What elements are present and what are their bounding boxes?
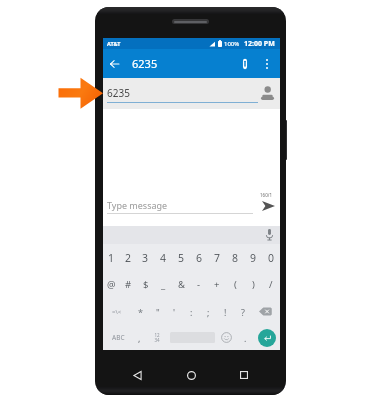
button[interactable]: 8: [226, 244, 244, 271]
button[interactable]: Emoji: [217, 325, 236, 350]
staticText: $: [143, 278, 149, 291]
staticText: #: [125, 278, 132, 291]
staticText: 5: [178, 251, 185, 265]
button[interactable]: Recent apps: [234, 365, 254, 385]
button[interactable]: Back: [127, 365, 147, 385]
button[interactable]: 9: [244, 244, 262, 271]
button[interactable]: ": [149, 298, 166, 325]
button[interactable]: Back: [105, 54, 124, 73]
staticText: 100%: [224, 40, 240, 48]
button[interactable]: Send: [260, 198, 276, 214]
button[interactable]: $: [137, 271, 154, 298]
button[interactable]: &: [172, 271, 190, 298]
staticText: (: [234, 278, 237, 291]
staticText: 3: [142, 251, 149, 265]
button[interactable]: #: [120, 271, 137, 298]
staticText: 12 34: [154, 332, 160, 343]
button[interactable]: 0: [262, 244, 280, 271]
staticText: AT&T: [107, 40, 121, 47]
staticText: ABC: [112, 333, 125, 342]
staticText: +: [214, 278, 220, 291]
staticText: 2: [125, 251, 132, 265]
button[interactable]: 6: [190, 244, 208, 271]
staticText: 8: [232, 251, 239, 265]
button[interactable]: !: [217, 298, 234, 325]
staticText: ?: [241, 306, 245, 318]
staticText: 6235: [107, 86, 130, 100]
button[interactable]: Enter: [258, 329, 276, 347]
staticText: Type message: [107, 199, 168, 211]
button[interactable]: Home: [181, 365, 201, 385]
staticText: _: [161, 278, 166, 291]
button[interactable]: 5: [172, 244, 190, 271]
staticText: !: [224, 306, 227, 318]
staticText: ': [173, 306, 176, 318]
staticText: *: [138, 306, 143, 318]
button[interactable]: 7: [208, 244, 226, 271]
button[interactable]: ': [166, 298, 183, 325]
button[interactable]: (: [226, 271, 244, 298]
staticText: -: [197, 278, 201, 291]
staticText: /: [269, 278, 273, 291]
button[interactable]: .: [236, 325, 254, 350]
button[interactable]: ?: [234, 298, 251, 325]
staticText: 4: [160, 251, 167, 265]
button[interactable]: ABC: [103, 325, 133, 350]
staticText: ": [156, 306, 160, 318]
staticText: 160/1: [260, 192, 272, 198]
button[interactable]: More options: [257, 54, 277, 74]
staticText: 1: [108, 251, 115, 265]
staticText: 0: [268, 251, 275, 265]
button[interactable]: -: [190, 271, 208, 298]
button[interactable]: *: [131, 298, 149, 325]
button[interactable]: =\<: [103, 298, 131, 325]
other: Contacts: [261, 86, 274, 100]
button[interactable]: 12 34: [145, 325, 168, 350]
staticText: .: [244, 332, 247, 344]
button[interactable]: _: [154, 271, 172, 298]
button[interactable]: 4: [154, 244, 172, 271]
button[interactable]: 6235: [103, 78, 280, 109]
staticText: 6235: [132, 56, 158, 71]
button[interactable]: 2: [120, 244, 137, 271]
button[interactable]: Delete: [251, 298, 280, 325]
staticText: 9: [250, 251, 257, 265]
button[interactable]: ;: [200, 298, 217, 325]
staticText: ;: [207, 306, 210, 318]
button[interactable]: :: [183, 298, 200, 325]
button[interactable]: 3: [137, 244, 154, 271]
staticText: 7: [214, 251, 221, 265]
staticText: 6: [196, 251, 203, 265]
staticText: &: [178, 278, 185, 291]
button[interactable]: Attach: [235, 54, 255, 74]
other: Voice input: [266, 229, 273, 240]
button[interactable]: 1: [103, 244, 120, 271]
staticText: :: [190, 306, 193, 318]
staticText: 12:00 PM: [244, 39, 275, 49]
staticText: ): [252, 278, 255, 291]
button[interactable]: @: [103, 271, 120, 298]
staticText: ,: [138, 332, 141, 344]
button[interactable]: /: [262, 271, 280, 298]
button[interactable]: ,: [133, 325, 145, 350]
staticText: @: [107, 278, 116, 291]
staticText: =\<: [112, 308, 122, 316]
button[interactable]: ): [244, 271, 262, 298]
button[interactable]: +: [208, 271, 226, 298]
